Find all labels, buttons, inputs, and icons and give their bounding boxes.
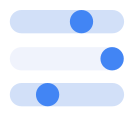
button[interactable]: First slider [10,10,124,33]
button[interactable]: Second slider [10,47,124,70]
button[interactable]: Third slider [10,83,124,106]
